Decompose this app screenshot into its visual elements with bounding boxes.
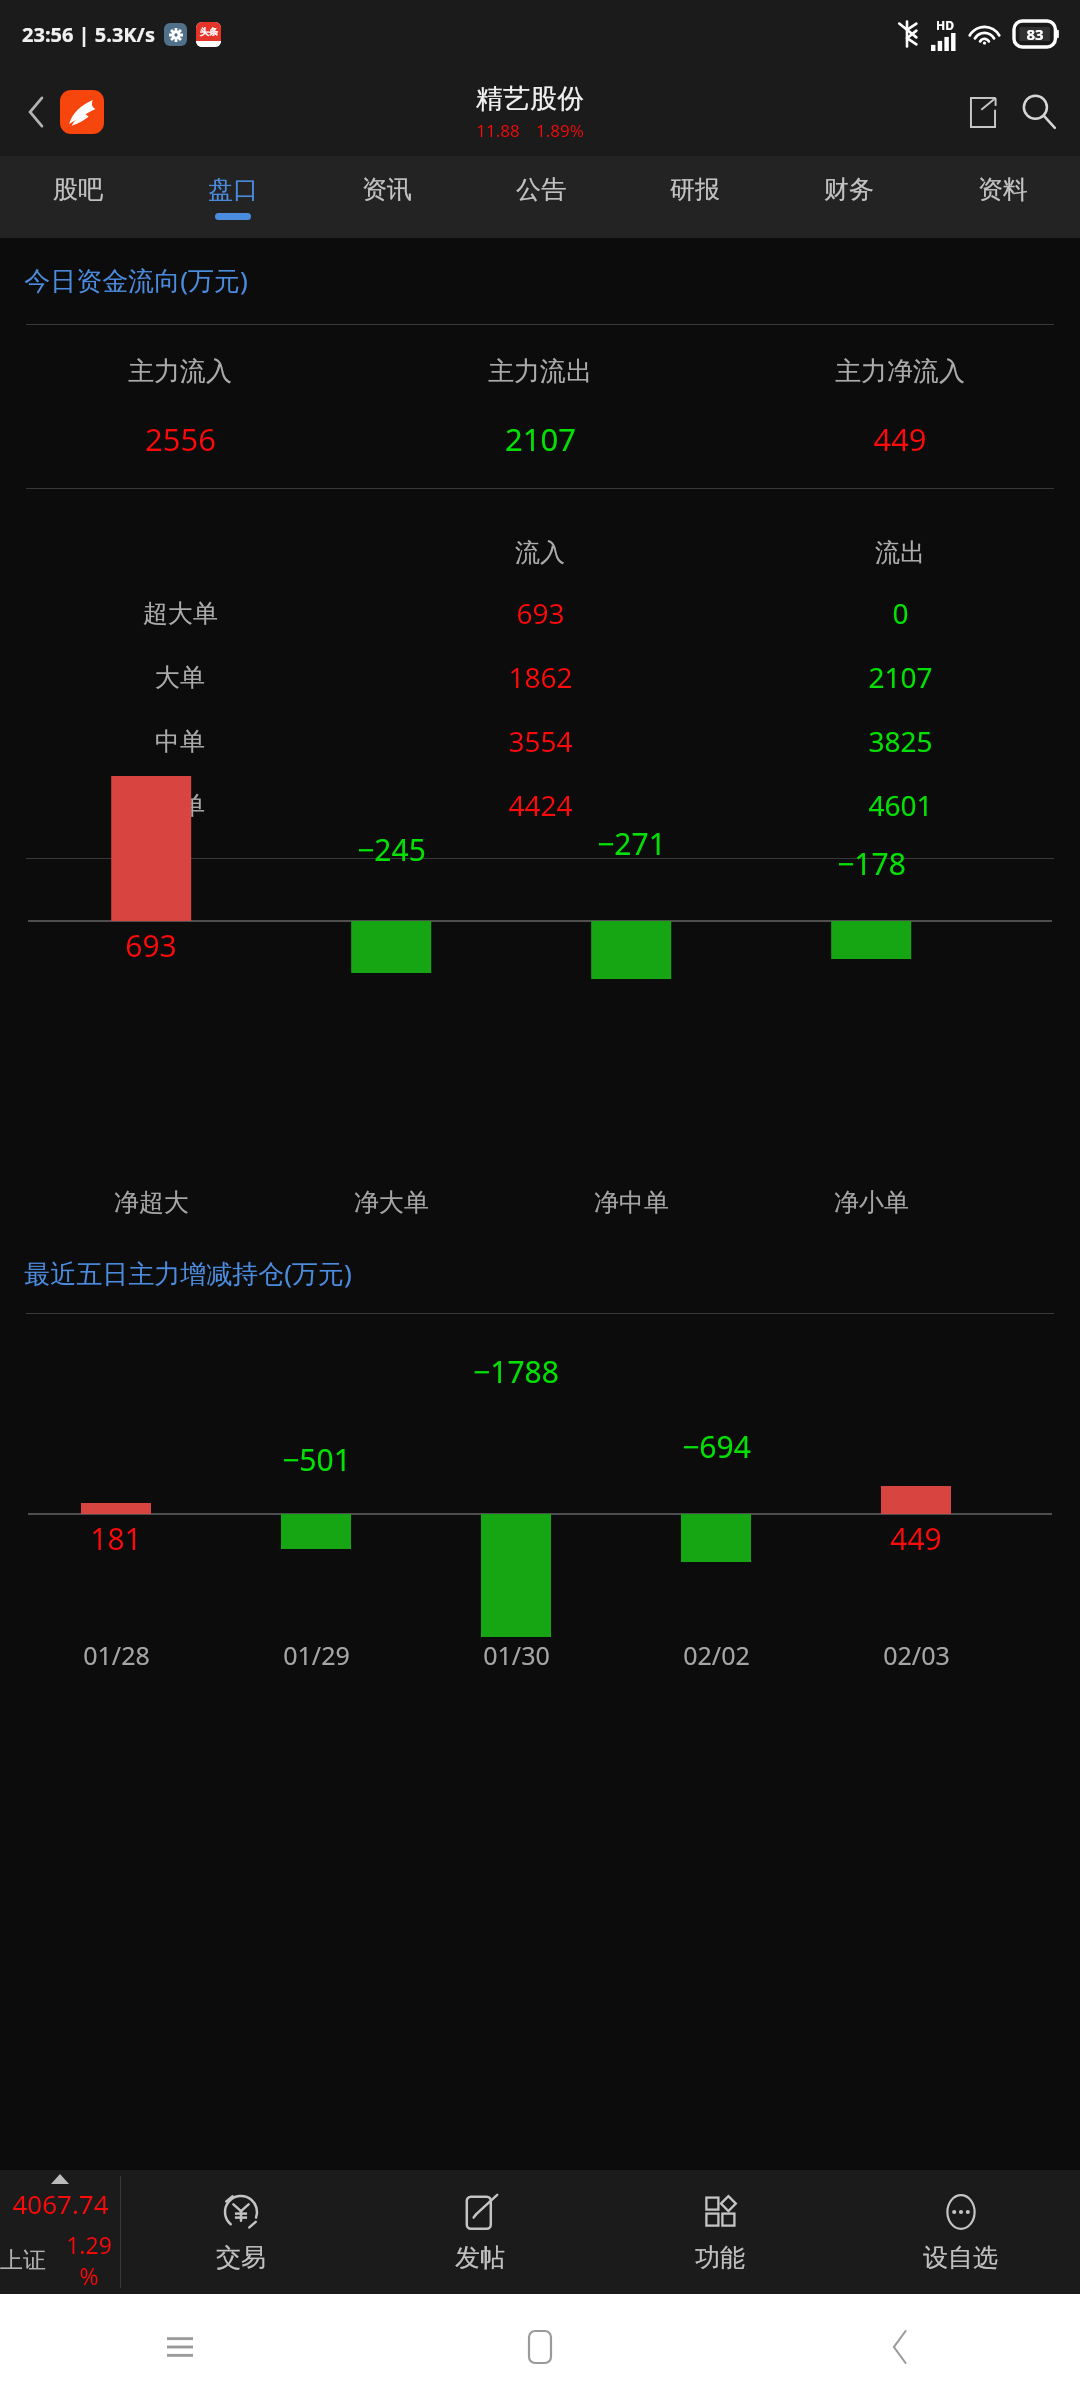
staticText: 上证 <box>0 2246 46 2275</box>
staticText: 小单 <box>155 790 205 821</box>
staticText: −501 <box>282 1439 351 1480</box>
other: Bluetooth <box>898 21 918 47</box>
button[interactable]: 发帖 <box>360 2170 600 2294</box>
staticText: 693 <box>516 594 565 632</box>
staticText: 181 <box>90 1518 142 1559</box>
staticText: 超大单 <box>143 598 218 629</box>
staticText: 交易 <box>216 2242 266 2273</box>
staticText: 3554 <box>508 722 573 760</box>
staticText: 流出 <box>875 537 925 568</box>
staticText: 主力流出 <box>488 355 592 388</box>
staticText: 449 <box>873 418 927 460</box>
staticText: 功能 <box>695 2242 745 2273</box>
staticText: 2107 <box>868 658 933 696</box>
button[interactable]: Recents <box>0 2294 360 2400</box>
staticText: 4601 <box>868 786 933 824</box>
staticText: 01/28 <box>83 1638 150 1672</box>
staticText: 股吧 <box>53 174 103 205</box>
staticText: 净超大 <box>114 1187 189 1218</box>
staticText: 83 <box>1026 24 1044 44</box>
staticText: 资讯 <box>362 174 412 205</box>
staticText: 资料 <box>978 174 1028 205</box>
staticText: 流入 <box>515 537 565 568</box>
button[interactable]: 功能 <box>600 2170 840 2294</box>
staticText: 公告 <box>516 174 566 205</box>
staticText: 11.88 <box>476 119 520 142</box>
staticText: 449 <box>890 1518 942 1559</box>
staticText: 1.29% <box>58 2229 120 2291</box>
staticText: 净中单 <box>594 1187 669 1218</box>
staticText: 1862 <box>508 658 573 696</box>
staticText: −271 <box>597 823 666 864</box>
button[interactable]: 公告 <box>464 156 618 238</box>
staticText: 今日资金流向(万元) <box>24 262 248 298</box>
staticText: 02/02 <box>683 1638 750 1672</box>
staticText: 设自选 <box>923 2242 998 2273</box>
staticText: −1788 <box>473 1351 559 1392</box>
staticText: 研报 <box>670 174 720 205</box>
staticText: 02/03 <box>883 1638 950 1672</box>
staticText: 中单 <box>155 726 205 757</box>
staticText: 主力净流入 <box>835 355 965 388</box>
button[interactable]: Share <box>956 85 1010 139</box>
button[interactable]: 资料 <box>926 156 1080 238</box>
staticText: −245 <box>357 829 426 870</box>
staticText: 净大单 <box>354 1187 429 1218</box>
staticText: −178 <box>837 843 906 884</box>
staticText: 23:56 | 5.3K/s <box>22 21 155 48</box>
button[interactable]: 资讯 <box>310 156 464 238</box>
button[interactable]: Home <box>60 90 104 134</box>
staticText: 最近五日主力增减持仓(万元) <box>24 1255 352 1291</box>
staticText: 大单 <box>155 662 205 693</box>
staticText: 693 <box>125 925 177 966</box>
button[interactable]: 股吧 <box>0 156 155 238</box>
staticText: −694 <box>682 1426 751 1467</box>
staticText: 1.89% <box>536 119 584 142</box>
staticText: 2107 <box>505 418 576 460</box>
staticText: 主力流入 <box>128 355 232 388</box>
staticText: 盘口 <box>208 174 258 205</box>
staticText: 财务 <box>824 174 874 205</box>
staticText: HD <box>936 17 954 33</box>
staticText: 01/30 <box>483 1638 550 1672</box>
button[interactable]: Back <box>720 2294 1080 2400</box>
staticText: 01/29 <box>283 1638 350 1672</box>
staticText: 精艺股份 <box>476 82 584 116</box>
staticText: 2556 <box>145 418 216 460</box>
button[interactable]: 盘口 <box>155 156 310 238</box>
button[interactable]: 研报 <box>618 156 772 238</box>
staticText: 4067.74 <box>12 2186 109 2221</box>
button[interactable]: Home <box>360 2294 720 2400</box>
button[interactable]: Search <box>1010 83 1068 141</box>
staticText: 净小单 <box>834 1187 909 1218</box>
staticText: 4424 <box>508 786 573 824</box>
staticText: 头条 <box>200 26 218 37</box>
button[interactable]: Back <box>12 88 60 136</box>
staticText: 发帖 <box>455 2242 505 2273</box>
button[interactable]: 设自选 <box>840 2170 1080 2294</box>
other: WiFi <box>971 22 1001 47</box>
staticText: 0 <box>892 594 909 632</box>
button[interactable]: 财务 <box>772 156 926 238</box>
button[interactable]: 4067.74 <box>0 2170 120 2294</box>
button[interactable]: 交易 <box>121 2170 360 2294</box>
staticText: 3825 <box>868 722 933 760</box>
